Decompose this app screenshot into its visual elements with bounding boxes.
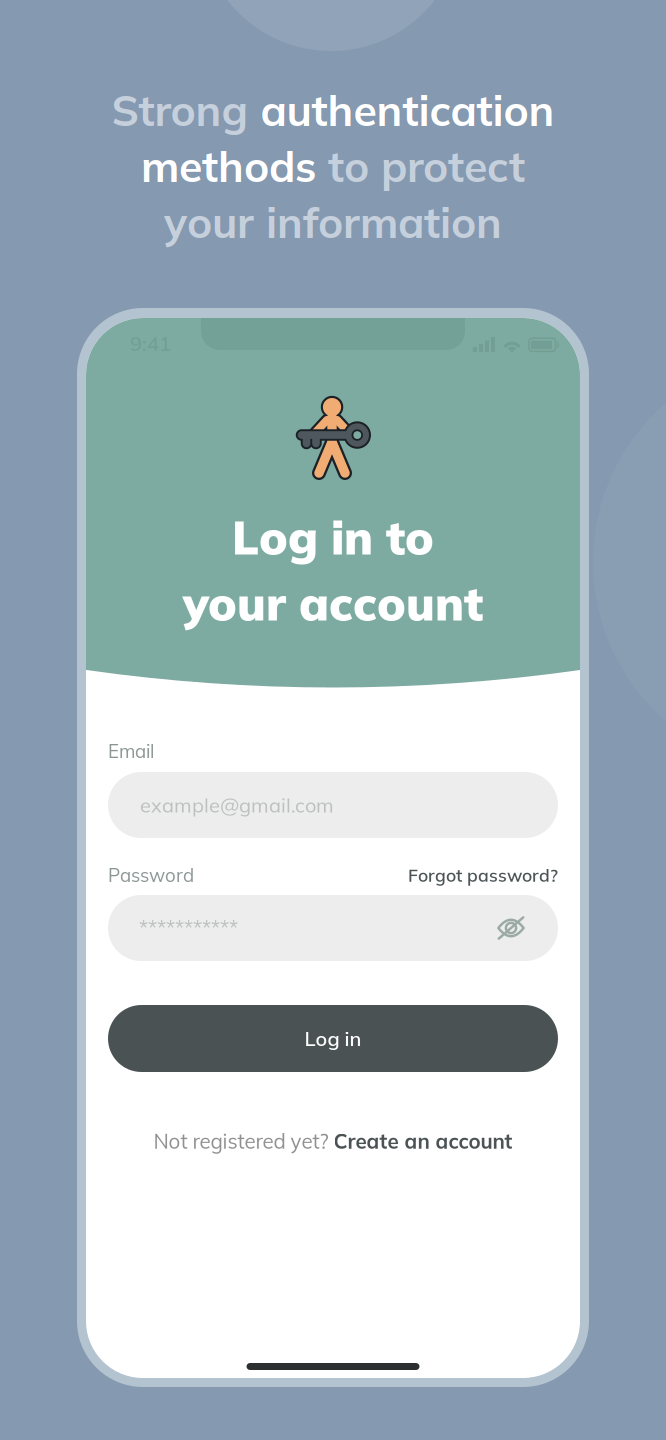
staticText: your account [183,574,483,632]
staticText: Not registered yet? [153,1128,333,1154]
staticText: methods [141,139,328,193]
button[interactable]: Show password [485,902,537,954]
staticText: to protect [328,139,525,193]
button[interactable]: Log in [108,1005,558,1072]
staticText: Create an account [333,1128,512,1154]
staticText: Password [108,863,194,887]
staticText: 9:41 [130,331,171,356]
staticText: Log in [304,1026,361,1051]
staticText: *********** [139,915,238,941]
staticText: example@gmail.com [140,792,334,818]
button[interactable]: Forgot password? [388,864,558,886]
staticText: Email [108,739,154,763]
button[interactable]: Not registered yet? [108,1128,558,1154]
staticText: authentication [260,83,554,137]
staticText: Strong [111,83,260,137]
staticText: Forgot password? [408,864,558,886]
staticText: your information [164,195,502,249]
staticText: Log in to [232,508,434,566]
